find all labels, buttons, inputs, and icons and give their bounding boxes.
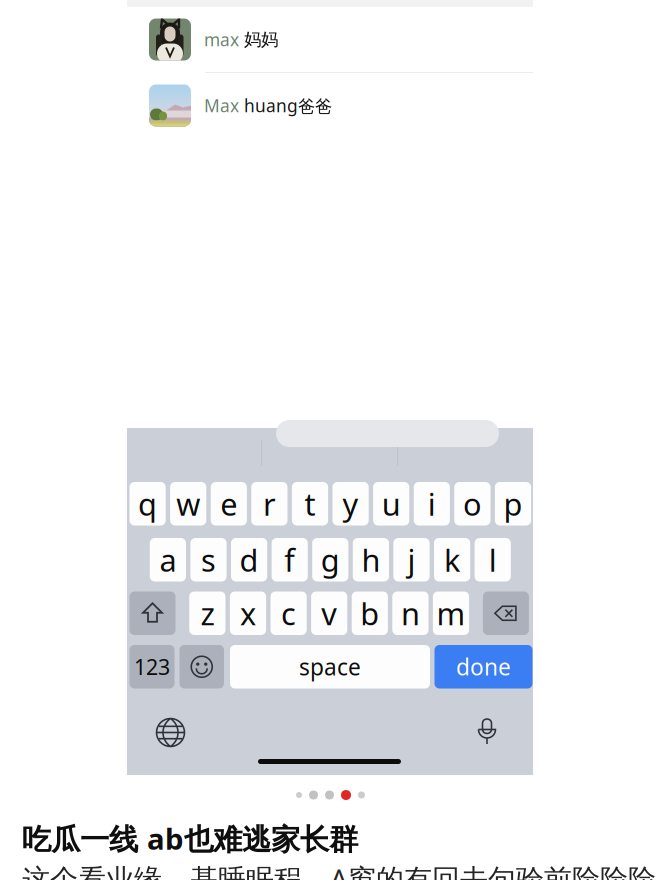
button[interactable]: space bbox=[230, 645, 430, 688]
button[interactable]: 123 bbox=[129, 645, 174, 688]
button[interactable]: Dictation bbox=[475, 717, 499, 749]
button[interactable]: x bbox=[230, 591, 266, 635]
staticText: l bbox=[489, 539, 497, 580]
button[interactable]: s bbox=[190, 538, 227, 581]
staticText: p bbox=[503, 483, 522, 524]
button[interactable]: Delete bbox=[483, 591, 529, 635]
staticText: z bbox=[200, 593, 214, 634]
button[interactable]: p bbox=[495, 482, 531, 525]
staticText: x bbox=[240, 593, 256, 634]
button[interactable]: u bbox=[373, 482, 409, 525]
button[interactable]: a bbox=[150, 538, 186, 581]
button[interactable]: Switch keyboard bbox=[155, 717, 186, 748]
button[interactable]: Emoji bbox=[179, 645, 224, 688]
button[interactable]: q bbox=[129, 482, 166, 525]
staticText: 123 bbox=[134, 653, 170, 681]
button[interactable]: b bbox=[352, 591, 388, 635]
button[interactable]: max bbox=[127, 7, 533, 72]
button[interactable]: y bbox=[332, 482, 369, 525]
staticText: a bbox=[159, 539, 176, 580]
staticText: s bbox=[201, 539, 216, 580]
button[interactable]: k bbox=[434, 538, 470, 581]
staticText: c bbox=[281, 593, 296, 634]
button[interactable]: n bbox=[392, 591, 428, 635]
staticText: u bbox=[382, 483, 401, 524]
button[interactable]: j bbox=[393, 538, 430, 581]
button[interactable]: d bbox=[231, 538, 267, 581]
button[interactable]: Max bbox=[127, 73, 533, 138]
button[interactable]: f bbox=[272, 538, 308, 581]
staticText: v bbox=[321, 593, 337, 634]
button[interactable]: h bbox=[353, 538, 389, 581]
staticText: k bbox=[444, 539, 460, 580]
button[interactable]: l bbox=[475, 538, 511, 581]
staticText: r bbox=[263, 483, 276, 524]
staticText: q bbox=[138, 483, 157, 524]
button[interactable]: o bbox=[454, 482, 490, 525]
button[interactable]: Shift bbox=[129, 591, 175, 635]
staticText: 吃瓜一线 ab也难逃家长群 bbox=[22, 819, 358, 858]
staticText: f bbox=[284, 539, 295, 580]
button[interactable]: v bbox=[311, 591, 347, 635]
button[interactable]: w bbox=[170, 482, 206, 525]
staticText: o bbox=[463, 483, 482, 524]
button[interactable]: e bbox=[211, 482, 247, 525]
staticText: y bbox=[343, 483, 359, 524]
staticText: b bbox=[360, 593, 379, 634]
button[interactable]: t bbox=[292, 482, 328, 525]
staticText: 这个看业缘，基睡眠程，A窗的有回去句验前险险险 bbox=[22, 860, 656, 880]
button[interactable]: c bbox=[270, 591, 307, 635]
button[interactable]: i bbox=[414, 482, 450, 525]
staticText: h bbox=[361, 539, 380, 580]
staticText: w bbox=[176, 483, 200, 524]
staticText: n bbox=[401, 593, 420, 634]
staticText: m bbox=[436, 593, 465, 634]
staticText: i bbox=[428, 483, 436, 524]
staticText: done bbox=[456, 652, 511, 682]
staticText: e bbox=[220, 483, 237, 524]
staticText: j bbox=[407, 539, 415, 580]
button[interactable]: m bbox=[433, 591, 469, 635]
staticText: space bbox=[299, 652, 361, 682]
button[interactable]: r bbox=[251, 482, 287, 525]
staticText: t bbox=[304, 483, 315, 524]
button[interactable]: done bbox=[434, 645, 532, 688]
button[interactable]: g bbox=[312, 538, 348, 581]
staticText: g bbox=[321, 539, 340, 580]
staticText: 妈妈 bbox=[239, 29, 278, 50]
staticText: max bbox=[204, 28, 239, 51]
staticText: Max bbox=[204, 94, 239, 117]
button[interactable]: z bbox=[189, 591, 225, 635]
staticText: d bbox=[240, 539, 259, 580]
staticText: huang爸爸 bbox=[239, 94, 332, 117]
